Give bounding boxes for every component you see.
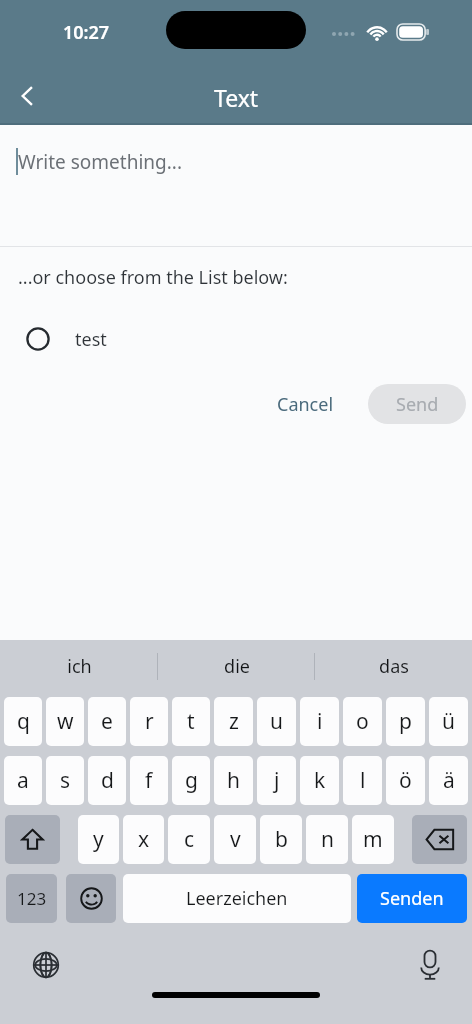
button[interactable]: a	[4, 756, 42, 805]
button[interactable]: d	[88, 756, 126, 805]
staticText: v	[230, 825, 241, 854]
staticText: 123	[17, 887, 47, 910]
staticText: t	[187, 707, 195, 736]
button[interactable]: e	[88, 697, 126, 746]
button[interactable]: b	[260, 815, 302, 864]
staticText: k	[314, 766, 326, 795]
staticText: x	[138, 825, 150, 854]
button[interactable]: q	[4, 697, 42, 746]
staticText: u	[270, 707, 283, 736]
button[interactable]: k	[300, 756, 339, 805]
button[interactable]: Back	[4, 72, 52, 120]
button[interactable]: Voice input	[406, 941, 454, 989]
button[interactable]: m	[352, 815, 394, 864]
staticText: y	[93, 825, 104, 854]
button[interactable]: c	[168, 815, 210, 864]
button[interactable]: w	[46, 697, 84, 746]
staticText: ö	[399, 766, 412, 795]
button[interactable]: x	[123, 815, 164, 864]
button[interactable]: Emoji	[66, 874, 116, 923]
staticText: p	[399, 707, 412, 736]
staticText: das	[379, 654, 409, 679]
button[interactable]: Senden	[357, 874, 467, 923]
staticText: Send	[396, 392, 439, 417]
button[interactable]: j	[257, 756, 296, 805]
button[interactable]: Cancel	[267, 384, 344, 425]
button[interactable]: r	[130, 697, 168, 746]
staticText: h	[227, 766, 240, 795]
staticText: g	[185, 766, 198, 795]
button[interactable]: s	[46, 756, 84, 805]
button[interactable]: ö	[386, 756, 425, 805]
button[interactable]: Shift	[5, 815, 60, 864]
staticText: Leerzeichen	[186, 886, 288, 911]
button[interactable]: o	[343, 697, 382, 746]
button[interactable]: Change keyboard language	[22, 941, 70, 989]
button[interactable]: t	[172, 697, 210, 746]
staticText: d	[101, 766, 114, 795]
button[interactable]: z	[214, 697, 253, 746]
staticText: die	[224, 654, 250, 679]
staticText: b	[275, 825, 288, 854]
button[interactable]: f	[130, 756, 168, 805]
button[interactable]: Write something...	[0, 125, 472, 246]
button[interactable]: l	[343, 756, 382, 805]
button[interactable]: y	[78, 815, 119, 864]
staticText: w	[57, 707, 74, 736]
button[interactable]: h	[214, 756, 253, 805]
staticText: j	[274, 766, 280, 795]
staticText: i	[317, 707, 323, 736]
staticText: a	[17, 766, 29, 795]
staticText: s	[60, 766, 71, 795]
staticText: n	[321, 825, 334, 854]
staticText: z	[229, 707, 239, 736]
staticText: o	[356, 707, 369, 736]
staticText: Text	[214, 82, 259, 113]
staticText: m	[363, 825, 383, 854]
staticText: f	[145, 766, 153, 795]
staticText: e	[101, 707, 113, 736]
staticText: ü	[442, 707, 455, 736]
staticText: l	[360, 766, 366, 795]
staticText: ...or choose from the List below:	[18, 265, 288, 290]
staticText: test	[75, 327, 107, 352]
button[interactable]: ich	[0, 640, 158, 693]
staticText: ich	[67, 654, 92, 679]
button[interactable]: das	[315, 640, 472, 693]
button[interactable]: Send	[368, 384, 466, 424]
staticText: Senden	[380, 886, 444, 911]
button[interactable]: Leerzeichen	[123, 874, 351, 923]
staticText: Write something...	[18, 149, 183, 175]
button[interactable]: i	[300, 697, 339, 746]
button[interactable]: u	[257, 697, 296, 746]
staticText: q	[17, 707, 30, 736]
button[interactable]: g	[172, 756, 210, 805]
button[interactable]: die	[158, 640, 315, 693]
staticText: c	[184, 825, 195, 854]
button[interactable]: Backspace	[412, 815, 467, 864]
button[interactable]: ü	[429, 697, 468, 746]
button[interactable]: n	[306, 815, 348, 864]
staticText: 10:27	[63, 20, 110, 45]
button[interactable]: v	[214, 815, 256, 864]
button[interactable]: test	[0, 314, 472, 364]
button[interactable]: ä	[429, 756, 468, 805]
button[interactable]: 123	[6, 874, 57, 923]
staticText: Cancel	[277, 392, 334, 417]
staticText: ä	[443, 766, 455, 795]
button[interactable]: p	[386, 697, 425, 746]
staticText: r	[145, 707, 154, 736]
